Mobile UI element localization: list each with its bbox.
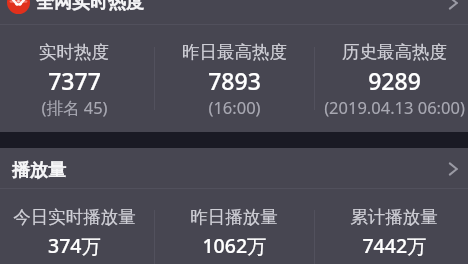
staticText: 累计播放量 xyxy=(350,206,438,228)
staticText: 今日实时播放量 xyxy=(13,206,136,228)
staticText: (排名 45) xyxy=(41,96,108,119)
staticText: 实时热度 xyxy=(39,41,109,63)
button[interactable]: 播放量 xyxy=(0,148,468,189)
staticText: 历史最高热度 xyxy=(342,41,447,63)
staticText: 7442万 xyxy=(362,232,427,259)
staticText: 9289 xyxy=(368,65,421,96)
staticText: (2019.04.13 06:00) xyxy=(324,96,465,118)
other: 查看全网实时热度详情 xyxy=(446,0,458,11)
staticText: (16:00) xyxy=(208,96,261,118)
staticText: 374万 xyxy=(48,232,101,259)
other: 查看播放量详情 xyxy=(446,161,458,177)
button[interactable]: 全网实时热度 xyxy=(0,0,468,15)
staticText: 7377 xyxy=(48,65,101,96)
staticText: 1062万 xyxy=(202,232,267,259)
staticText: 播放量 xyxy=(12,159,66,182)
staticText: 昨日播放量 xyxy=(190,206,278,228)
staticText: 昨日最高热度 xyxy=(182,41,287,63)
staticText: 全网实时热度 xyxy=(36,0,144,14)
staticText: 7893 xyxy=(208,65,261,96)
